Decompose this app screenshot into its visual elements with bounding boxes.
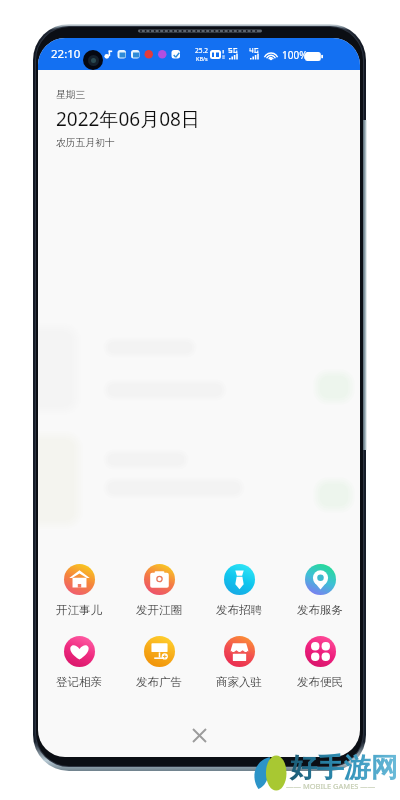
button[interactable]: 开江事儿 (44, 564, 114, 617)
staticText: 发开江圈 (136, 603, 182, 617)
staticText: 发布便民 (297, 675, 343, 689)
staticText: 22:10 (51, 46, 81, 62)
staticText: 发布招聘 (216, 603, 262, 617)
staticText: 登记相亲 (56, 675, 102, 689)
button[interactable]: 发布服务 (285, 564, 355, 617)
staticText: 好手游网 (290, 751, 398, 785)
button[interactable]: Close (184, 720, 214, 750)
button[interactable]: 发布广告 (124, 636, 194, 689)
staticText: 星期三 (56, 89, 86, 101)
staticText: 发布广告 (136, 675, 182, 689)
staticText: 100% (282, 48, 308, 62)
staticText: —— MOBILE GAMES —— (286, 781, 376, 791)
staticText: 农历五月初十 (56, 137, 115, 149)
staticText: 商家入驻 (216, 675, 262, 689)
button[interactable]: 发开江圈 (124, 564, 194, 617)
button[interactable]: 登记相亲 (44, 636, 114, 689)
staticText: 2022年06月08日 (56, 106, 200, 132)
staticText: 25.2 (195, 46, 208, 55)
button[interactable]: 商家入驻 (204, 636, 274, 689)
staticText: 开江事儿 (56, 603, 102, 617)
staticText: KB/s (196, 55, 208, 62)
button[interactable]: 发布便民 (285, 636, 355, 689)
button[interactable]: 发布招聘 (204, 564, 274, 617)
staticText: 发布服务 (297, 603, 343, 617)
